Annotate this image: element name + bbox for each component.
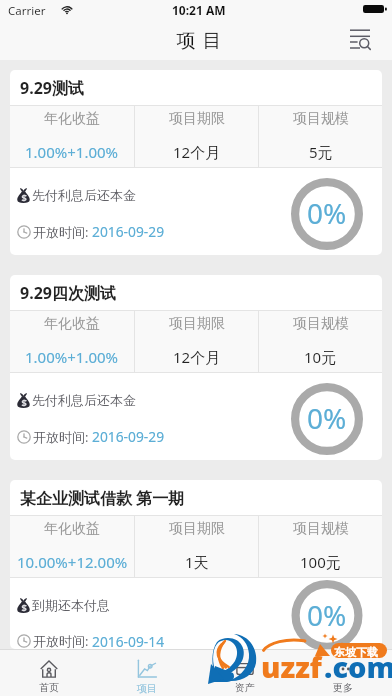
button[interactable]: 某企业测试借款 第一期 <box>10 480 382 649</box>
staticText: 首页 <box>39 681 59 694</box>
staticText: 10元 <box>304 347 337 367</box>
staticText: 9.29四次测试 <box>20 282 116 304</box>
button[interactable]: 9.29测试 <box>10 70 382 255</box>
staticText: 10:21 AM <box>172 2 226 18</box>
staticText: 项目期限 <box>169 110 225 128</box>
staticText: 某企业测试借款 第一期 <box>20 487 185 509</box>
staticText: 开放时间: <box>33 223 92 241</box>
staticText: 项目期限 <box>169 520 225 538</box>
staticText: 项目规模 <box>293 520 349 538</box>
staticText: 5元 <box>309 142 333 162</box>
staticText: 年化收益 <box>44 315 100 333</box>
staticText: 项目规模 <box>293 315 349 333</box>
staticText: Carrier <box>8 3 46 19</box>
staticText: 1.00%+1.00% <box>25 347 119 367</box>
staticText: 到期还本付息 <box>32 597 110 613</box>
staticText: 100元 <box>300 552 341 572</box>
button[interactable]: Search and filter <box>342 22 376 56</box>
staticText: 2016-09-29 <box>92 222 165 241</box>
button[interactable]: 项目 <box>98 651 196 695</box>
staticText: 项目 <box>173 29 225 53</box>
staticText: 9.29测试 <box>20 77 84 99</box>
staticText: 开放时间: <box>33 632 92 649</box>
staticText: 年化收益 <box>44 520 100 538</box>
staticText: 12个月 <box>173 347 221 367</box>
staticText: 资产 <box>235 681 255 694</box>
staticText: 10.00%+12.00% <box>17 552 128 572</box>
staticText: 项目规模 <box>293 110 349 128</box>
staticText: .com <box>324 647 392 686</box>
staticText: 2016-09-29 <box>92 427 165 446</box>
staticText: 1.00%+1.00% <box>25 142 119 162</box>
button[interactable]: 资产 <box>196 652 294 694</box>
staticText: 1天 <box>185 552 209 572</box>
staticText: 先付利息后还本金 <box>32 392 136 408</box>
staticText: 更多 <box>333 681 353 694</box>
button[interactable]: 更多 <box>294 652 392 694</box>
staticText: 项目期限 <box>169 315 225 333</box>
staticText: 0% <box>307 399 347 437</box>
staticText: 先付利息后还本金 <box>32 187 136 203</box>
staticText: uzzf <box>261 647 322 686</box>
staticText: 项目 <box>137 682 157 695</box>
staticText: 年化收益 <box>44 110 100 128</box>
staticText: 开放时间: <box>33 428 92 446</box>
staticText: 0% <box>307 596 347 634</box>
staticText: 0% <box>307 194 347 232</box>
button[interactable]: 首页 <box>0 652 98 694</box>
staticText: 2016-09-14 <box>92 632 165 649</box>
button[interactable]: 9.29四次测试 <box>10 275 382 460</box>
staticText: 东坡下载 <box>334 645 378 659</box>
staticText: 12个月 <box>173 142 221 162</box>
